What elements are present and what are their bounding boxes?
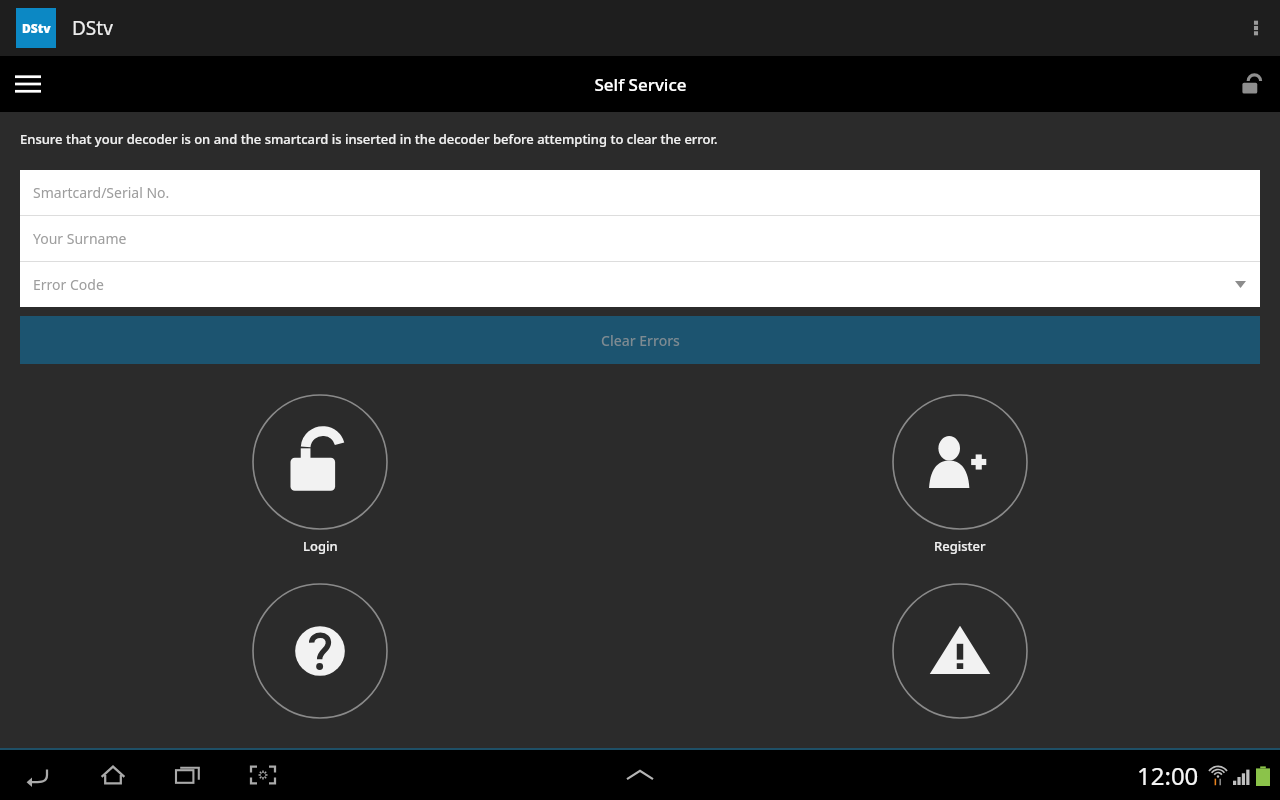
staticText: Login xyxy=(303,537,338,555)
staticText: Self Service xyxy=(594,73,687,96)
button[interactable]: Secure xyxy=(1224,56,1280,112)
button[interactable]: Errors xyxy=(640,583,1280,719)
button[interactable]: Login xyxy=(0,394,640,555)
staticText: Register xyxy=(934,537,986,555)
staticText: 12:00 xyxy=(1137,759,1199,792)
staticText: DStv xyxy=(22,20,51,36)
button[interactable]: Error Code xyxy=(20,262,1260,307)
button[interactable]: Expand xyxy=(610,750,670,800)
button[interactable]: Back xyxy=(0,750,75,800)
staticText: Your Surname xyxy=(33,229,127,248)
button[interactable]: Your Surname xyxy=(20,216,1260,261)
button[interactable]: Home xyxy=(75,750,150,800)
button[interactable]: Register xyxy=(640,394,1280,555)
staticText: DStv xyxy=(72,15,113,41)
staticText: Clear Errors xyxy=(601,331,680,350)
button[interactable]: Help xyxy=(0,583,640,719)
button[interactable]: More options xyxy=(1232,4,1280,52)
button[interactable]: Smartcard/Serial No. xyxy=(20,170,1260,215)
staticText: Error Code xyxy=(33,275,104,294)
button[interactable]: Recent apps xyxy=(150,750,225,800)
button[interactable]: Clear Errors xyxy=(20,316,1260,364)
button[interactable]: Menu xyxy=(0,56,56,112)
button[interactable]: Screenshot xyxy=(225,750,300,800)
staticText: Smartcard/Serial No. xyxy=(33,183,170,202)
staticText: Ensure that your decoder is on and the s… xyxy=(20,130,718,148)
